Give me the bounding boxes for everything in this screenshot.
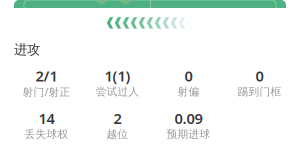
staticText: 丢失球权 — [24, 128, 68, 141]
button[interactable]: 0.09 — [153, 113, 224, 139]
button[interactable]: 0 — [153, 70, 224, 96]
staticText: 1(1) — [104, 66, 130, 85]
staticText: 越位 — [106, 128, 128, 141]
staticText: 尝试过人 — [95, 85, 139, 98]
button[interactable]: 2/1 — [11, 70, 82, 96]
button[interactable]: 14 — [11, 113, 82, 139]
staticText: 射门/射正 — [22, 85, 70, 99]
staticText: 0.09 — [174, 108, 202, 128]
button[interactable]: 1(1) — [82, 70, 153, 96]
button[interactable]: 2 — [82, 113, 153, 139]
staticText: 2 — [113, 108, 121, 128]
staticText: 射偏 — [177, 85, 199, 98]
staticText: 进攻 — [14, 41, 40, 58]
staticText: 2/1 — [35, 66, 57, 85]
staticText: 预期进球 — [166, 128, 210, 141]
staticText: 踢到门框 — [237, 85, 281, 98]
staticText: 0 — [255, 66, 263, 85]
staticText: 14 — [38, 108, 54, 128]
button[interactable]: 0 — [224, 70, 295, 96]
staticText: 0 — [184, 66, 192, 85]
